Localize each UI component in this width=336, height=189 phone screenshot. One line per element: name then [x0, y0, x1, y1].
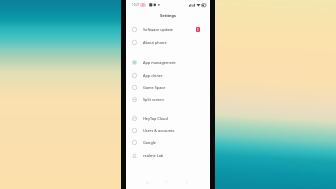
- button[interactable]: HeyTap Cloud: [126, 112, 210, 124]
- staticText: About phone: [143, 40, 167, 45]
- staticText: Game Space: [143, 85, 166, 90]
- button[interactable]: realme Lab: [126, 149, 210, 161]
- staticText: 1: [197, 28, 199, 32]
- staticText: Users & accounts: [143, 128, 175, 133]
- staticText: 10:27: [132, 3, 140, 7]
- button[interactable]: About phone: [126, 36, 210, 48]
- button[interactable]: App cloner: [126, 69, 210, 81]
- button[interactable]: Google: [126, 136, 210, 148]
- staticText: Settings: [160, 13, 176, 18]
- staticText: Google: [143, 140, 156, 145]
- staticText: realme Lab: [143, 153, 164, 158]
- staticText: HeyTap Cloud: [143, 116, 168, 121]
- button[interactable]: Users & accounts: [126, 124, 210, 136]
- staticText: App management: [143, 60, 176, 65]
- button[interactable]: Split screen: [126, 93, 210, 105]
- button[interactable]: Software update: [126, 23, 210, 35]
- staticText: Software update: [143, 27, 174, 32]
- staticText: App cloner: [143, 73, 163, 78]
- staticText: Split screen: [143, 97, 164, 102]
- button[interactable]: App management: [126, 56, 210, 68]
- staticText: 2: [142, 3, 144, 7]
- button[interactable]: Game Space: [126, 81, 210, 93]
